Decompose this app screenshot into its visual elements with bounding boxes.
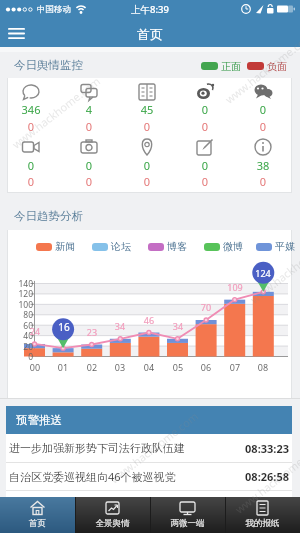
staticText: 02: [80, 361, 104, 373]
staticText: 中国移动: [37, 4, 71, 15]
staticText: 今日舆情监控: [14, 58, 83, 72]
staticText: 0: [243, 102, 283, 117]
staticText: www.hackhome.com: [107, 408, 201, 487]
staticText: 08:33:23: [243, 441, 289, 456]
staticText: 24: [20, 325, 50, 337]
button[interactable]: [4, 24, 32, 44]
staticText: 46: [134, 314, 164, 326]
staticText: 01: [51, 361, 75, 373]
button[interactable]: [0, 497, 75, 533]
staticText: 0: [185, 158, 225, 173]
button[interactable]: [225, 497, 300, 533]
staticText: 0: [243, 174, 283, 189]
staticText: 0: [127, 158, 167, 173]
staticText: 0: [69, 158, 109, 173]
staticText: 100: [6, 299, 33, 311]
button[interactable]: [150, 497, 225, 533]
staticText: 08: [251, 361, 275, 373]
staticText: 06: [194, 361, 218, 373]
staticText: 60: [6, 320, 33, 332]
staticText: www.hackhome.com: [222, 28, 300, 107]
staticText: 上午8:39: [0, 3, 300, 16]
staticText: www.hackhome.com: [247, 228, 300, 307]
staticText: 0: [185, 102, 225, 117]
staticText: 0: [11, 174, 51, 189]
staticText: 80: [6, 309, 33, 321]
staticText: 0: [185, 174, 225, 189]
staticText: 自治区党委巡视组向46个被巡视党: [9, 469, 176, 484]
staticText: 34: [163, 320, 193, 332]
staticText: www.hackhome.com: [9, 73, 103, 152]
staticText: 两微一端: [150, 518, 225, 529]
staticText: 我的报纸: [225, 518, 300, 529]
staticText: 00: [23, 361, 47, 373]
button[interactable]: [75, 497, 150, 533]
staticText: 05: [166, 361, 190, 373]
staticText: 正面: [221, 60, 241, 73]
staticText: 0: [243, 119, 283, 134]
staticText: 0: [69, 119, 109, 134]
staticText: www.hackhome.com: [232, 438, 300, 517]
staticText: 0: [11, 119, 51, 134]
staticText: 45: [127, 102, 167, 117]
staticText: 04: [137, 361, 161, 373]
staticText: 07: [223, 361, 247, 373]
staticText: 0: [11, 158, 51, 173]
staticText: 博客: [167, 240, 187, 253]
staticText: 03: [108, 361, 132, 373]
staticText: 346: [11, 102, 51, 117]
staticText: 4: [69, 102, 109, 117]
staticText: 23: [77, 326, 107, 338]
button[interactable]: [6, 462, 292, 490]
button[interactable]: [6, 406, 292, 434]
staticText: 0: [69, 174, 109, 189]
staticText: 140: [6, 278, 33, 290]
staticText: 微博: [223, 240, 243, 253]
staticText: 0: [185, 119, 225, 134]
staticText: 论坛: [111, 240, 131, 253]
staticText: 109: [220, 281, 250, 293]
staticText: 预警推送: [16, 413, 62, 427]
staticText: 进一步加强新形势下司法行政队伍建: [9, 441, 185, 455]
staticText: 今日趋势分析: [14, 209, 83, 223]
staticText: 20: [6, 341, 33, 353]
staticText: 0: [6, 351, 33, 363]
staticText: 首页: [0, 26, 300, 42]
staticText: 40: [6, 330, 33, 342]
staticText: 新闻: [55, 240, 75, 253]
staticText: 0: [127, 119, 167, 134]
staticText: 全景舆情: [75, 518, 150, 529]
button[interactable]: [6, 434, 292, 462]
staticText: 16: [49, 320, 79, 334]
staticText: 124: [248, 267, 278, 279]
staticText: 平媒: [275, 240, 295, 253]
staticText: 首页: [0, 518, 75, 529]
staticText: 负面: [267, 60, 287, 73]
staticText: 120: [6, 288, 33, 300]
staticText: 0: [127, 174, 167, 189]
staticText: 70: [191, 301, 221, 313]
staticText: 38: [243, 158, 283, 173]
staticText: 34: [105, 320, 135, 332]
staticText: 08:26:58: [243, 469, 289, 484]
